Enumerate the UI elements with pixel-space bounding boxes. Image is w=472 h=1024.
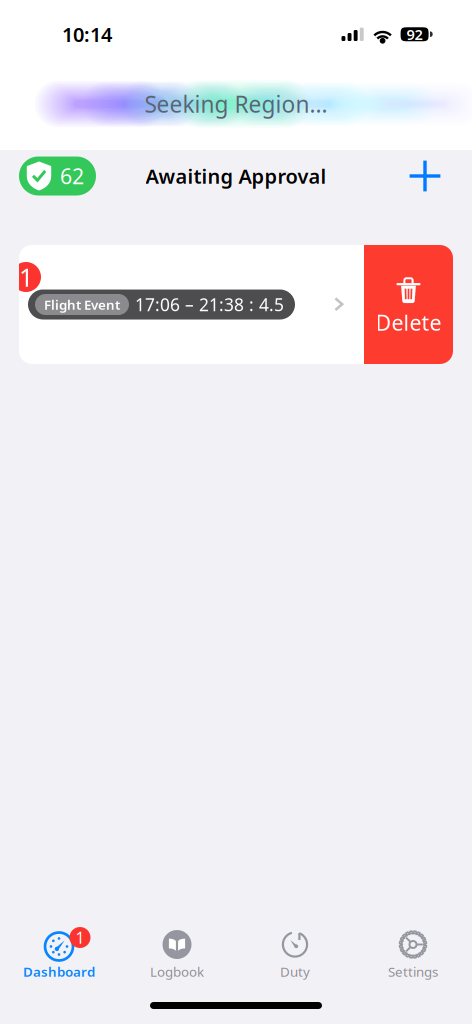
staticText: 10:14	[62, 21, 112, 48]
staticText: 1	[19, 260, 33, 294]
button[interactable]: Duty	[236, 923, 354, 979]
staticText: Dashboard	[23, 963, 95, 980]
staticText: Logbook	[150, 963, 204, 980]
button[interactable]: Logbook	[118, 923, 236, 979]
staticText: Duty	[280, 963, 310, 980]
button[interactable]: Add	[403, 154, 447, 198]
staticText: Awaiting Approval	[145, 163, 326, 189]
staticText: 62	[60, 162, 84, 190]
staticText: Delete	[375, 308, 441, 337]
staticText: Flight Event	[44, 296, 120, 313]
button[interactable]: 62	[19, 156, 96, 195]
button[interactable]: 1	[0, 923, 118, 979]
staticText: 17:06 – 21:38 : 4.5	[135, 293, 284, 316]
staticText: 1	[75, 927, 84, 948]
button[interactable]: Settings	[354, 923, 472, 979]
staticText: Seeking Region...	[144, 89, 327, 119]
staticText: Settings	[388, 963, 438, 980]
staticText: 92	[407, 24, 423, 44]
button[interactable]: Delete	[364, 245, 453, 364]
